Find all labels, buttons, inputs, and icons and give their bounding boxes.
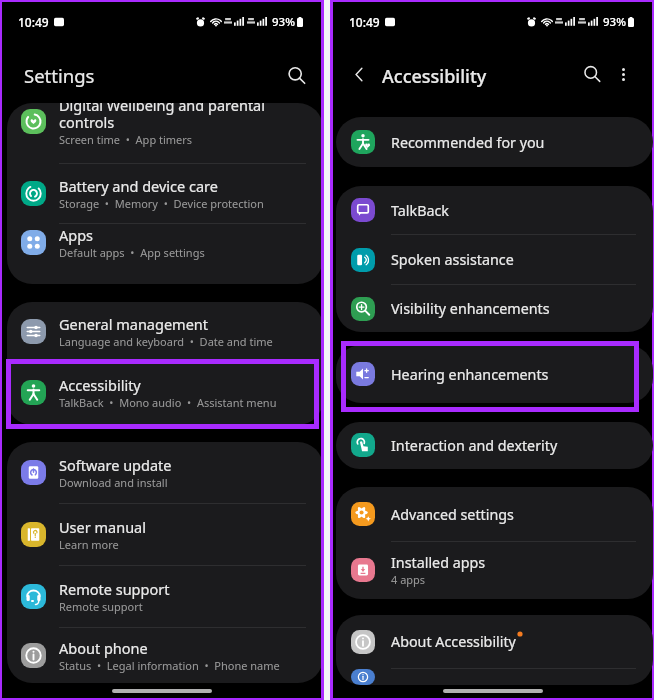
- staticText: TalkBack: [391, 201, 449, 220]
- staticText: Software update: [59, 455, 172, 475]
- staticText: Advanced settings: [391, 505, 514, 524]
- button[interactable]: User manual: [7, 504, 321, 565]
- button[interactable]: More options: [609, 60, 637, 88]
- staticText: TalkBack • Mono audio • Assistant menu: [59, 395, 277, 410]
- button[interactable]: General management: [7, 302, 321, 360]
- button[interactable]: Advanced settings: [336, 487, 653, 541]
- staticText: Interaction and dexterity: [391, 436, 558, 455]
- button[interactable]: About Accessibility: [336, 615, 653, 668]
- staticText: Visibility enhancements: [391, 299, 550, 318]
- staticText: Remote support: [59, 599, 143, 614]
- staticText: 93%: [603, 14, 626, 30]
- button[interactable]: Apps: [7, 224, 321, 260]
- staticText: Storage • Memory • Device protection: [59, 196, 264, 211]
- staticText: 93%: [272, 14, 295, 30]
- staticText: Remote support: [59, 579, 170, 599]
- staticText: Recommended for you: [391, 133, 545, 152]
- button[interactable]: About phone: [7, 628, 321, 683]
- staticText: Download and install: [59, 475, 168, 490]
- staticText: Default apps • App settings: [59, 245, 205, 260]
- button[interactable]: Spoken assistance: [336, 235, 653, 284]
- button[interactable]: [336, 669, 653, 685]
- staticText: Digital Wellbeing and parental controls: [59, 103, 309, 132]
- button[interactable]: Interaction and dexterity: [336, 422, 653, 468]
- staticText: Spoken assistance: [391, 250, 514, 269]
- button[interactable]: Digital Wellbeing and parental controls: [7, 103, 321, 163]
- button[interactable]: Battery and device care: [7, 164, 321, 223]
- staticText: About Accessibility: [391, 632, 516, 651]
- staticText: Accessibility: [59, 375, 141, 395]
- button[interactable]: Visibility enhancements: [336, 285, 653, 332]
- staticText: General management: [59, 314, 209, 334]
- button[interactable]: Accessibility: [7, 360, 321, 424]
- button[interactable]: Remote support: [7, 566, 321, 627]
- staticText: Apps: [59, 225, 94, 245]
- button[interactable]: TalkBack: [336, 186, 653, 234]
- button[interactable]: Back: [345, 60, 373, 88]
- button[interactable]: Hearing enhancements: [336, 345, 653, 403]
- button[interactable]: Search: [283, 62, 309, 88]
- staticText: Learn more: [59, 537, 119, 552]
- staticText: Installed apps: [391, 553, 486, 572]
- staticText: 10:49: [349, 14, 380, 30]
- button[interactable]: Installed apps: [336, 542, 653, 597]
- button[interactable]: Software update: [7, 442, 321, 503]
- staticText: Hearing enhancements: [391, 365, 549, 384]
- staticText: Screen time • App timers: [59, 132, 193, 147]
- button[interactable]: Recommended for you: [336, 117, 653, 167]
- staticText: Battery and device care: [59, 176, 218, 196]
- staticText: Status • Legal information • Phone name: [59, 658, 280, 673]
- staticText: Settings: [24, 63, 95, 88]
- staticText: 10:49: [18, 14, 49, 30]
- staticText: About phone: [59, 638, 148, 658]
- button[interactable]: Search: [578, 60, 606, 88]
- staticText: Accessibility: [382, 64, 487, 89]
- staticText: User manual: [59, 517, 146, 537]
- staticText: 4 apps: [391, 572, 426, 587]
- staticText: Language and keyboard • Date and time: [59, 334, 273, 349]
